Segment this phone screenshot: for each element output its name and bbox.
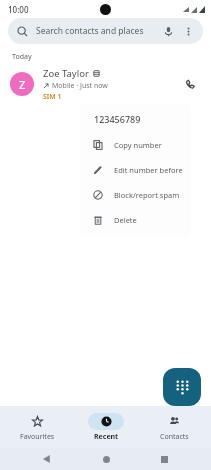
staticText: Today <box>12 52 32 62</box>
button[interactable]: Favourites <box>6 410 68 445</box>
button[interactable]: Home <box>95 448 117 470</box>
staticText: Delete <box>114 215 137 225</box>
staticText: Edit number before call <box>114 165 183 175</box>
staticText: 10:00 <box>8 4 29 15</box>
button[interactable]: Edit number before call <box>80 157 191 182</box>
staticText: 123456789 <box>94 113 141 125</box>
button[interactable]: Contacts <box>143 410 205 445</box>
staticText: Mobile · Just now <box>52 81 108 91</box>
button[interactable]: Z <box>0 64 211 104</box>
staticText: Z <box>19 77 26 92</box>
staticText: Search contacts and places <box>36 25 144 37</box>
staticText: Block/report spam <box>114 190 180 200</box>
button[interactable]: Delete <box>80 207 191 232</box>
button[interactable]: Dialpad <box>163 368 201 406</box>
staticText: Recent <box>94 432 119 442</box>
button[interactable]: Recents <box>153 448 175 470</box>
button[interactable]: Call <box>179 73 201 95</box>
button[interactable]: Recent <box>75 410 137 445</box>
staticText: Zoe Taylor <box>43 67 89 80</box>
button[interactable]: Block/report spam <box>80 182 191 207</box>
staticText: Contacts <box>160 432 189 442</box>
staticText: Favourites <box>20 432 55 442</box>
staticText: SIM 1 <box>43 92 62 102</box>
button[interactable]: Search contacts and places <box>8 18 203 44</box>
button[interactable]: Back <box>36 448 58 470</box>
staticText: Copy number <box>114 140 162 150</box>
button[interactable]: Copy number <box>80 132 191 157</box>
